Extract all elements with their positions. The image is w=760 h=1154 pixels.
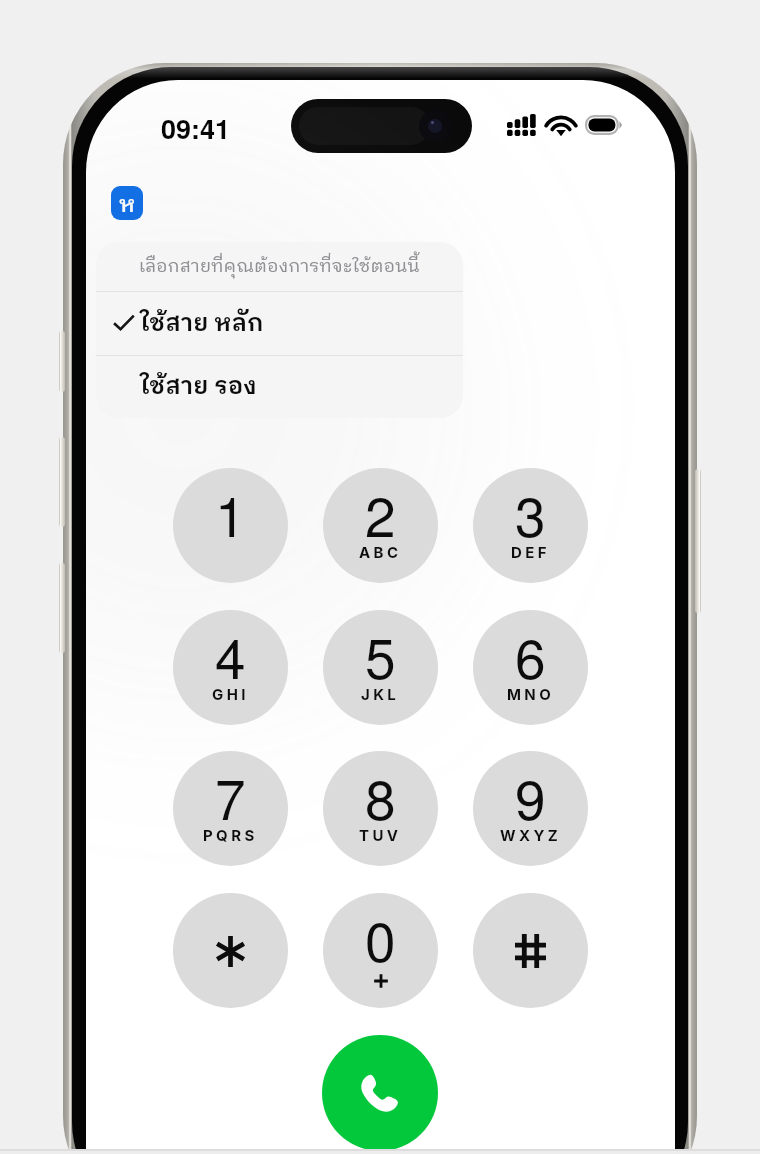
staticText: 1: [215, 474, 246, 553]
staticText: WXYZ: [500, 826, 562, 844]
staticText: 09:41: [161, 109, 231, 148]
button[interactable]: ใช้สาย หลัก: [96, 292, 463, 355]
button[interactable]: 6: [473, 610, 588, 725]
staticText: JKL: [361, 685, 400, 703]
staticText: TUV: [359, 826, 402, 844]
staticText: MNO: [507, 685, 555, 703]
staticText: 3: [515, 474, 546, 553]
staticText: 6: [515, 616, 546, 695]
button[interactable]: 9: [473, 751, 588, 866]
button[interactable]: 5: [323, 610, 438, 725]
staticText: 4: [215, 616, 246, 695]
staticText: 5: [365, 616, 396, 695]
button[interactable]: 2: [323, 468, 438, 583]
staticText: 8: [365, 757, 396, 836]
staticText: DEF: [511, 543, 550, 561]
button[interactable]: Call: [322, 1035, 438, 1151]
button[interactable]: 1: [173, 468, 288, 583]
staticText: GHI: [212, 685, 249, 703]
button[interactable]: 3: [473, 468, 588, 583]
staticText: เลือกสายที่คุณต้องการที่จะใช้ตอนนี้: [139, 252, 420, 282]
staticText: ABC: [359, 543, 402, 561]
button[interactable]: 8: [323, 751, 438, 866]
staticText: ใช้สาย รอง: [140, 367, 257, 407]
staticText: 7: [215, 757, 246, 836]
staticText: ห: [119, 186, 136, 220]
button[interactable]: [473, 893, 588, 1008]
button[interactable]: [173, 893, 288, 1008]
button[interactable]: Keyboard language: [111, 186, 143, 220]
button[interactable]: 4: [173, 610, 288, 725]
staticText: 9: [515, 757, 546, 836]
staticText: ใช้สาย หลัก: [140, 304, 264, 344]
staticText: 0: [365, 899, 396, 978]
button[interactable]: 0: [323, 893, 438, 1008]
button[interactable]: ใช้สาย รอง: [96, 356, 463, 418]
staticText: PQRS: [203, 826, 258, 844]
button[interactable]: 7: [173, 751, 288, 866]
staticText: 2: [365, 474, 396, 553]
